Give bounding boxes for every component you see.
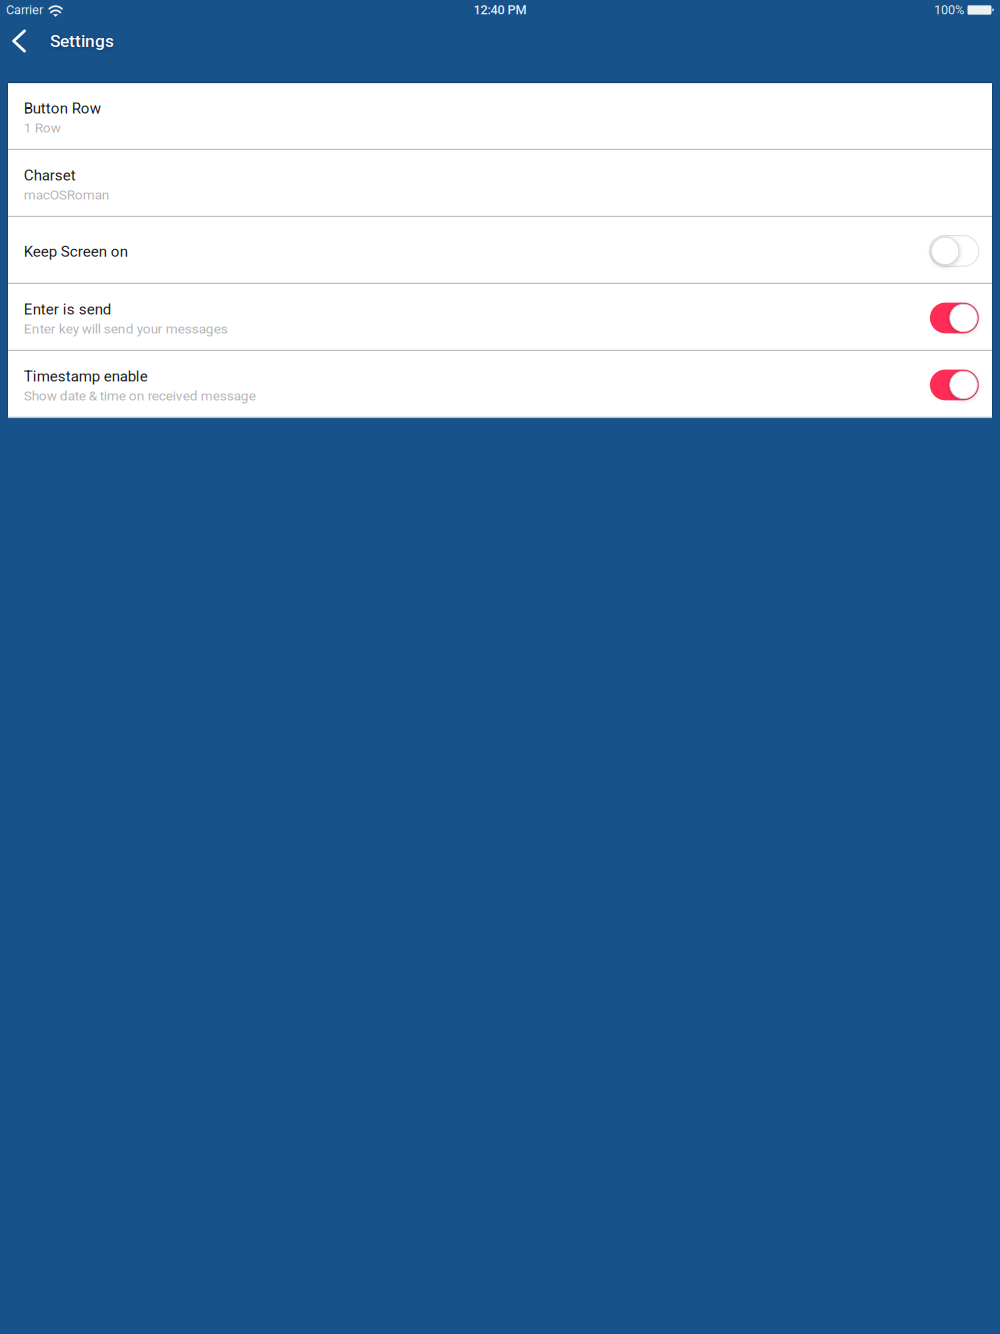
button[interactable]: Enter is send	[8, 284, 992, 350]
staticText: Timestamp enable	[24, 367, 148, 385]
button[interactable]: Button Row	[8, 83, 992, 149]
button[interactable]: Timestamp enable	[8, 351, 992, 417]
staticText: Enter key will send your messages	[24, 321, 228, 337]
staticText: Show date & time on received message	[24, 388, 256, 404]
staticText: Charset	[24, 166, 76, 184]
button[interactable]: Charset	[8, 150, 992, 216]
button[interactable]: Back	[0, 20, 37, 62]
button[interactable]: Keep Screen on	[8, 217, 992, 283]
staticText: 100%	[934, 3, 964, 17]
staticText: Button Row	[24, 99, 101, 117]
staticText: Enter is send	[24, 300, 111, 318]
staticText: Settings	[50, 31, 114, 51]
staticText: Carrier	[6, 3, 43, 17]
staticText: Keep Screen on	[24, 243, 128, 260]
staticText: macOSRoman	[24, 187, 110, 203]
staticText: 12:40 PM	[473, 3, 526, 17]
staticText: 1 Row	[24, 120, 61, 136]
